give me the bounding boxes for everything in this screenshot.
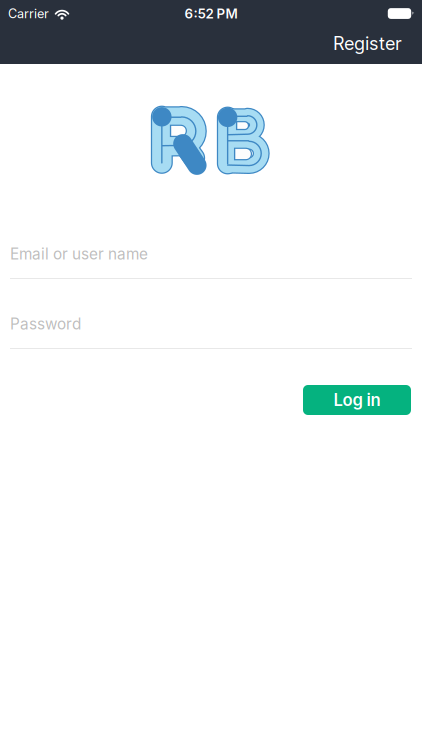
staticText: Carrier [8, 6, 49, 21]
button[interactable]: Log in [303, 385, 411, 415]
staticText: Log in [333, 390, 380, 410]
staticText: Email or user name [10, 245, 148, 263]
staticText: 6:52 PM [184, 5, 237, 22]
staticText: Password [10, 315, 81, 333]
staticText: Register [333, 33, 402, 54]
button[interactable]: Register [321, 25, 414, 62]
